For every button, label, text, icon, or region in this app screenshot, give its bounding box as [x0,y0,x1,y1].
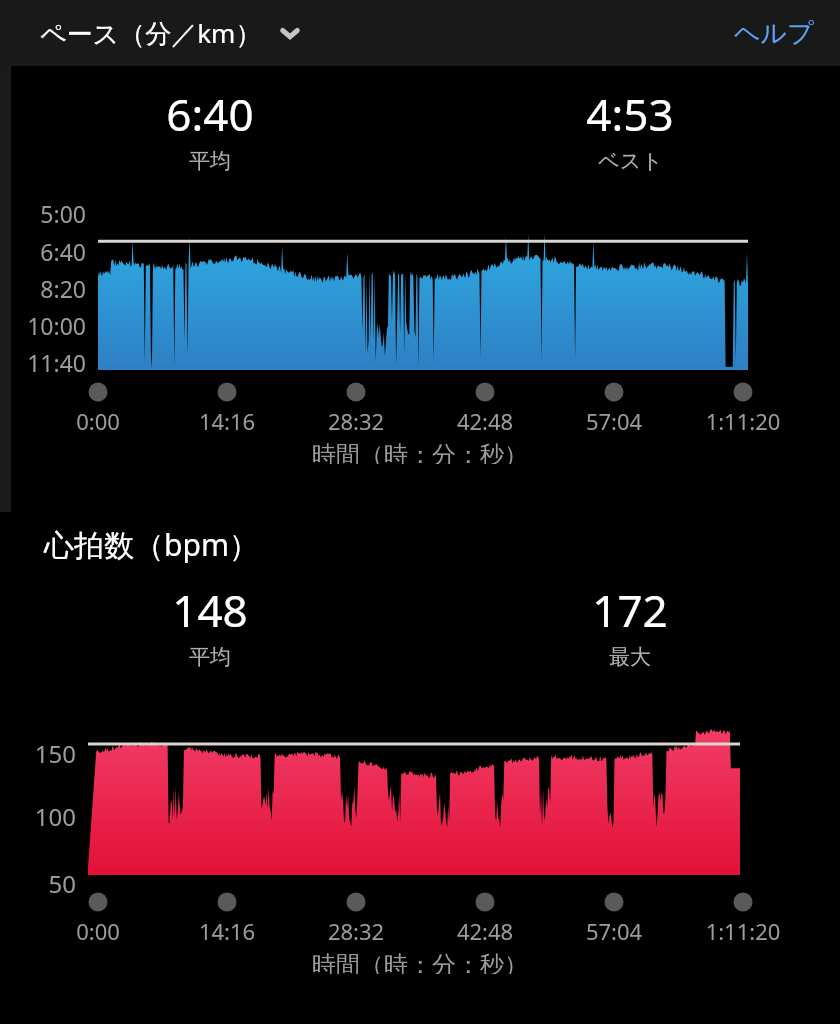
other: Change metric [276,19,304,47]
staticText: 6:40 [166,84,254,144]
staticText: 心拍数（bpm） [44,524,259,565]
staticText: 0:00 [13,406,183,436]
staticText: 時間（時：分：秒） [0,950,840,974]
staticText: 平均 [189,148,231,174]
staticText: 28:32 [271,406,441,436]
staticText: 28:32 [271,916,441,946]
button[interactable]: ペース（分／km） [0,7,324,59]
staticText: 6:40 [0,236,86,267]
staticText: 5:00 [0,198,86,229]
staticText: 1:11:20 [658,406,828,436]
staticText: 57:04 [529,916,699,946]
staticText: ペース（分／km） [40,15,262,51]
staticText: 42:48 [400,916,570,946]
staticText: 42:48 [400,406,570,436]
staticText: 14:16 [142,916,312,946]
staticText: 57:04 [529,406,699,436]
staticText: 11:40 [0,347,86,378]
button[interactable]: ヘルプ [708,5,840,62]
staticText: 148 [172,580,248,640]
staticText: ベスト [598,148,663,174]
staticText: 100 [0,800,76,833]
staticText: 平均 [189,644,231,670]
staticText: 10:00 [0,310,86,341]
staticText: 時間（時：分：秒） [0,440,840,464]
staticText: 最大 [609,644,651,670]
staticText: ヘルプ [734,17,814,50]
staticText: 172 [592,580,668,640]
staticText: 150 [0,737,76,770]
staticText: 4:53 [586,84,674,144]
staticText: 8:20 [0,273,86,304]
staticText: 14:16 [142,406,312,436]
staticText: 0:00 [13,916,183,946]
staticText: 50 [0,867,76,900]
staticText: 1:11:20 [658,916,828,946]
